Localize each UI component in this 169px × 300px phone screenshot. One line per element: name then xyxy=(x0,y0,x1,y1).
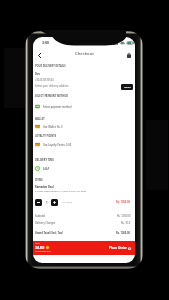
button[interactable]: ASAP xyxy=(33,165,135,172)
staticText: Select xyxy=(124,86,131,89)
button[interactable]: Increase quantity xyxy=(51,199,58,206)
staticText: Rs. 1260.00 xyxy=(116,231,131,235)
staticText: Rs. 1250.00 xyxy=(116,200,131,204)
staticText: Select payment method xyxy=(43,105,72,108)
staticText: ASAP xyxy=(43,167,50,170)
staticText: Delivery Charges xyxy=(35,221,56,224)
staticText: DELIVERY TIME xyxy=(35,158,54,161)
button[interactable]: Total xyxy=(33,241,135,255)
button[interactable]: Back xyxy=(34,50,44,60)
staticText: Grand Total (Incl. Tax) xyxy=(35,231,63,235)
button[interactable]: Decrease quantity xyxy=(35,199,42,206)
staticText: Ramadan Deal xyxy=(35,185,54,189)
staticText: 3:00 xyxy=(42,40,50,45)
staticText: Use Wallet. Rs. 0 xyxy=(43,125,63,128)
staticText: Rs. 10.0 xyxy=(121,221,131,224)
staticText: SELECT PAYMENT METHOD xyxy=(35,94,69,97)
staticText: WALLET xyxy=(35,117,45,120)
staticText: 4 Crispy Zinger Burgers, 2 Small Fries &… xyxy=(35,190,87,193)
staticText: YOUR DELIVERY DETAILS xyxy=(35,64,66,67)
staticText: ITEMS xyxy=(35,178,43,181)
staticText: Place Order xyxy=(109,246,127,250)
staticText: Checkout xyxy=(75,51,94,57)
button[interactable]: Use Loyalty Points: 0.00 xyxy=(33,141,135,148)
staticText: LOYALTY POINTS xyxy=(35,134,57,137)
staticText: Subtotal xyxy=(35,214,46,217)
staticText: 24.00 xyxy=(35,245,45,250)
staticText: Rs. 1250.00 xyxy=(117,214,131,217)
staticText: No. Deals xyxy=(62,201,72,204)
staticText: Dev xyxy=(35,72,40,76)
staticText: +923333575564 xyxy=(35,78,54,81)
staticText: 1 xyxy=(46,201,48,205)
button[interactable]: Use Wallet. Rs. 0 xyxy=(33,123,135,130)
button[interactable]: Cart xyxy=(124,50,134,60)
staticText: all the taxes incl. xyxy=(35,250,51,253)
button[interactable]: Select xyxy=(121,84,133,90)
staticText: Use Loyalty Points: 0.00 xyxy=(43,143,72,146)
staticText: Select your delivery address xyxy=(35,84,69,87)
staticText: Total xyxy=(35,242,40,245)
button[interactable]: Select payment method xyxy=(33,103,135,110)
